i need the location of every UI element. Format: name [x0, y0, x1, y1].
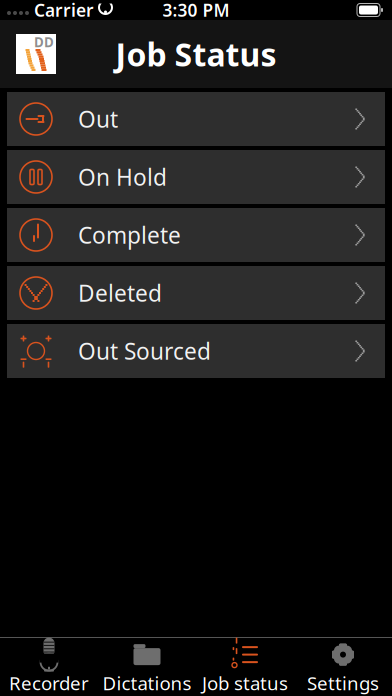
staticText: Settings [307, 671, 379, 695]
staticText: Job status [202, 671, 288, 695]
staticText: On Hold [78, 162, 167, 192]
staticText: Complete [78, 220, 181, 250]
button[interactable]: Out [7, 92, 385, 146]
button[interactable]: Recorder [0, 635, 98, 696]
staticText: Out [78, 104, 118, 134]
button[interactable]: Dictations [98, 635, 196, 696]
staticText: Deleted [78, 278, 162, 308]
button[interactable]: Out Sourced [7, 324, 385, 378]
button[interactable]: On Hold [7, 150, 385, 204]
button[interactable]: Settings [294, 635, 392, 696]
button[interactable]: Job status [196, 635, 294, 696]
button[interactable]: App logo [16, 34, 56, 74]
staticText: Dictations [102, 671, 191, 695]
staticText: Recorder [9, 671, 89, 695]
staticText: 3:30 PM [162, 0, 229, 21]
staticText: DD [34, 33, 54, 51]
button[interactable]: Deleted [7, 266, 385, 320]
button[interactable]: Complete [7, 208, 385, 262]
staticText: Job Status [115, 33, 276, 75]
staticText: Carrier [34, 0, 94, 21]
staticText: Out Sourced [78, 336, 211, 366]
